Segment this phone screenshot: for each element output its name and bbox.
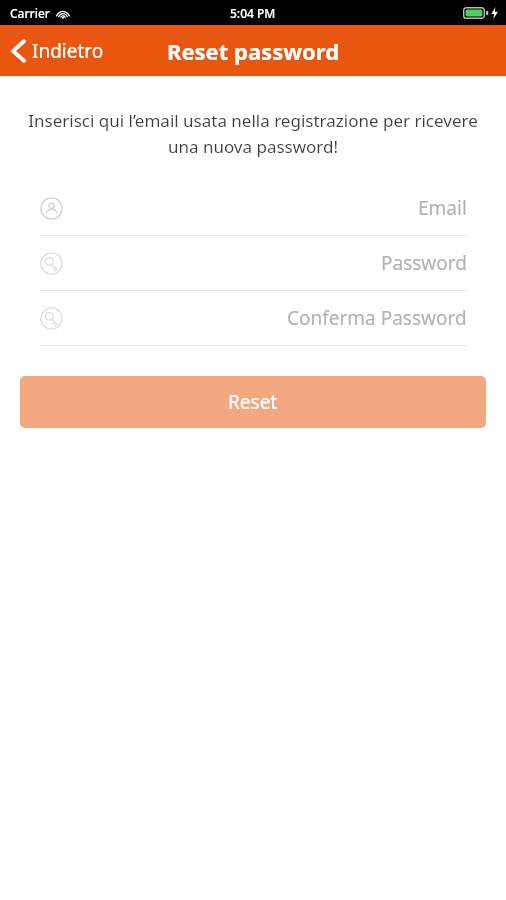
staticText: Conferma Password <box>287 305 467 331</box>
button[interactable]: Indietro <box>0 32 116 70</box>
button[interactable]: Reset <box>20 376 486 428</box>
staticText: Reset <box>228 389 278 415</box>
staticText: Reset password <box>167 36 340 66</box>
button[interactable]: Email <box>0 181 506 236</box>
staticText: Carrier <box>10 5 50 21</box>
staticText: Indietro <box>32 38 104 64</box>
staticText: Password <box>381 250 467 276</box>
button[interactable]: Password <box>0 236 506 291</box>
staticText: Inserisci qui l’email usata nella regist… <box>28 109 478 158</box>
staticText: Email <box>418 195 467 221</box>
button[interactable]: Conferma Password <box>0 291 506 346</box>
staticText: 5:04 PM <box>230 5 276 21</box>
